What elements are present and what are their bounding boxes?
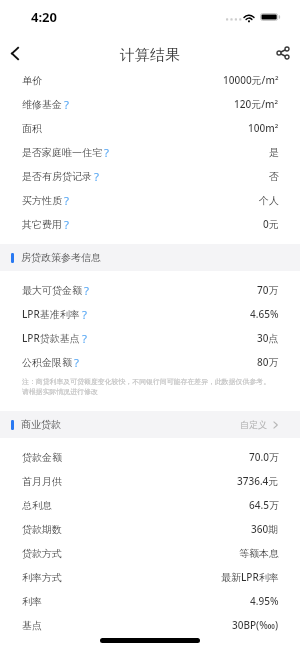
button[interactable]: 面积 (0, 116, 300, 140)
staticText: 维修基金 (22, 98, 62, 111)
staticText: ? (94, 169, 99, 185)
staticText: 64.5万 (249, 498, 279, 512)
staticText: 利率 (22, 595, 42, 608)
button[interactable]: 贷款金额 (0, 445, 300, 469)
staticText: ? (64, 193, 69, 209)
button[interactable]: Back (0, 37, 31, 69)
staticText: LPR贷款基点 (22, 331, 80, 345)
staticText: 3736.4元 (237, 474, 279, 488)
staticText: 360期 (251, 522, 279, 536)
staticText: 70万 (257, 283, 279, 297)
button[interactable]: 公积金限额 (0, 350, 300, 374)
button[interactable]: 最大可贷金额 (0, 278, 300, 302)
staticText: 30BP(‱) (232, 618, 279, 632)
staticText: 房贷政策参考信息 (21, 251, 101, 264)
staticText: 面积 (22, 122, 42, 135)
staticText: ? (82, 331, 87, 347)
staticText: 70.0万 (249, 450, 279, 464)
staticText: 等额本息 (239, 547, 279, 560)
button[interactable]: Share (267, 37, 299, 69)
staticText: 自定义 (240, 419, 267, 430)
staticText: 个人 (259, 194, 279, 207)
button[interactable]: 贷款期数 (0, 517, 300, 541)
staticText: 是否有房贷记录 (22, 170, 92, 183)
staticText: 商业贷款 (21, 418, 61, 431)
staticText: 利率方式 (22, 571, 62, 584)
button[interactable]: 是否有房贷记录 (0, 164, 300, 188)
button[interactable]: 是否家庭唯一住宅 (0, 140, 300, 164)
staticText: 注：商贷利率及可贷额度变化较快，不同银行间可能存在差异，此数据仅供参考。 请根据… (22, 377, 271, 396)
button[interactable]: 买方性质 (0, 188, 300, 212)
staticText: 首月月供 (22, 475, 62, 488)
button[interactable]: 贷款方式 (0, 541, 300, 565)
staticText: 10000元/m² (223, 73, 279, 87)
staticText: 基点 (22, 619, 42, 632)
staticText: 其它费用 (22, 218, 62, 231)
button[interactable]: 单价 (0, 68, 300, 92)
staticText: ? (104, 145, 109, 161)
button[interactable]: 自定义 (240, 419, 278, 430)
staticText: ? (82, 307, 87, 323)
staticText: 120元/m² (234, 97, 279, 111)
button[interactable]: 总利息 (0, 493, 300, 517)
staticText: 贷款金额 (22, 451, 62, 464)
staticText: 否 (269, 170, 279, 183)
button[interactable]: 利率 (0, 589, 300, 613)
staticText: 计算结果 (120, 46, 180, 65)
staticText: 贷款方式 (22, 547, 62, 560)
staticText: 30点 (257, 331, 279, 345)
button[interactable]: 其它费用 (0, 212, 300, 236)
staticText: 100m² (248, 121, 279, 135)
staticText: 贷款期数 (22, 523, 62, 536)
staticText: 公积金限额 (22, 356, 72, 369)
staticText: 买方性质 (22, 194, 62, 207)
staticText: 单价 (22, 74, 42, 87)
button[interactable]: LPR基准利率 (0, 302, 300, 326)
staticText: ? (74, 355, 79, 371)
staticText: 4.95% (250, 594, 279, 608)
staticText: 是 (269, 146, 279, 159)
staticText: ? (84, 283, 89, 299)
staticText: 0元 (263, 217, 279, 231)
staticText: 最新LPR利率 (221, 570, 279, 584)
button[interactable]: 基点 (0, 613, 300, 637)
staticText: 是否家庭唯一住宅 (22, 146, 102, 159)
staticText: LPR基准利率 (22, 307, 80, 321)
staticText: 总利息 (22, 499, 52, 512)
button[interactable]: 利率方式 (0, 565, 300, 589)
button[interactable]: LPR贷款基点 (0, 326, 300, 350)
button[interactable]: 首月月供 (0, 469, 300, 493)
staticText: 80万 (257, 355, 279, 369)
staticText: 4.65% (250, 307, 279, 321)
staticText: 最大可贷金额 (22, 284, 82, 297)
staticText: ? (64, 97, 69, 113)
button[interactable]: 维修基金 (0, 92, 300, 116)
staticText: 4:20 (31, 8, 57, 26)
staticText: ? (64, 217, 69, 233)
